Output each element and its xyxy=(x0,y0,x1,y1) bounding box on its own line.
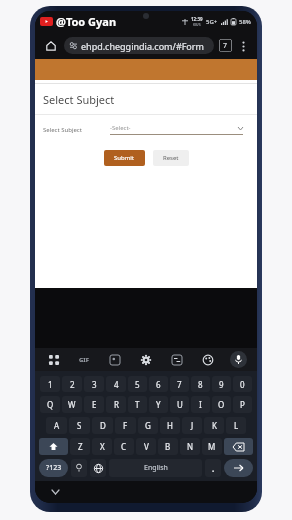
staticText: P xyxy=(240,399,245,410)
button[interactable]: Y xyxy=(149,396,168,413)
button[interactable]: GIF xyxy=(76,352,92,368)
button[interactable]: 2 xyxy=(62,376,82,392)
staticText: KB/S xyxy=(193,22,201,27)
staticText: 2 xyxy=(70,379,75,390)
button[interactable]: Z xyxy=(70,438,90,455)
button[interactable]: M xyxy=(202,438,222,455)
staticText: English xyxy=(144,463,168,473)
button[interactable]: More options xyxy=(236,39,250,53)
staticText: 5G+ xyxy=(206,18,218,26)
button[interactable]: N xyxy=(180,438,200,455)
button[interactable]: Submit xyxy=(104,150,145,166)
staticText: E xyxy=(92,399,97,410)
button[interactable]: ehpd.cheggindia.com/#Form xyxy=(64,37,214,54)
staticText: . xyxy=(212,463,215,474)
button[interactable]: ?123 xyxy=(39,459,68,477)
staticText: B xyxy=(165,441,171,452)
button[interactable]: U xyxy=(170,396,189,413)
button[interactable]: Q xyxy=(40,396,60,413)
button[interactable]: 8 xyxy=(191,376,210,392)
button[interactable]: Apps xyxy=(45,351,62,368)
button[interactable]: O xyxy=(212,396,231,413)
button[interactable]: D xyxy=(92,417,113,434)
staticText: S xyxy=(77,420,82,431)
button[interactable]: 3 xyxy=(84,376,104,392)
staticText: R xyxy=(114,399,119,410)
staticText: F xyxy=(123,420,128,431)
button[interactable]: Reset xyxy=(153,150,189,166)
button[interactable]: 9 xyxy=(212,376,231,392)
button[interactable]: Settings xyxy=(137,351,154,368)
button[interactable]: E xyxy=(84,396,104,413)
button[interactable]: X xyxy=(92,438,112,455)
button[interactable]: B xyxy=(158,438,178,455)
staticText: X xyxy=(100,441,105,452)
staticText: H xyxy=(167,420,173,431)
staticText: M xyxy=(208,441,216,452)
button[interactable]: P xyxy=(233,396,252,413)
button[interactable]: . xyxy=(205,459,221,477)
button[interactable]: Tabs xyxy=(219,39,232,52)
staticText: N xyxy=(187,441,194,452)
staticText: Select Subject xyxy=(43,92,115,107)
button[interactable]: Hide keyboard xyxy=(49,486,61,498)
button[interactable]: Home xyxy=(42,37,60,55)
button[interactable]: 7 xyxy=(170,376,189,392)
button[interactable]: C xyxy=(114,438,134,455)
staticText: 6 xyxy=(156,379,161,390)
button[interactable]: Change language xyxy=(90,459,106,477)
staticText: U xyxy=(177,399,183,410)
button[interactable]: F xyxy=(115,417,136,434)
staticText: Select Subject xyxy=(43,126,82,134)
button[interactable]: 5 xyxy=(128,376,147,392)
button[interactable]: T xyxy=(128,396,147,413)
staticText: 7 xyxy=(177,379,182,390)
staticText: O xyxy=(218,399,225,410)
staticText: T xyxy=(135,399,140,410)
staticText: ehpd.cheggindia.com/#Form xyxy=(81,40,204,52)
staticText: Q xyxy=(47,399,54,410)
staticText: 9 xyxy=(219,379,224,390)
button[interactable]: English xyxy=(109,459,202,477)
staticText: GIF xyxy=(79,356,89,364)
button[interactable]: Themes xyxy=(199,351,216,368)
button[interactable]: 4 xyxy=(106,376,126,392)
staticText: A xyxy=(54,420,60,431)
staticText: 1 xyxy=(48,379,53,390)
button[interactable]: V xyxy=(136,438,156,455)
button[interactable]: 1 xyxy=(40,376,60,392)
button[interactable]: K xyxy=(204,417,224,434)
button[interactable]: A xyxy=(46,417,67,434)
button[interactable]: Voice input xyxy=(230,351,247,368)
button[interactable]: I xyxy=(191,396,210,413)
staticText: @Too Gyan xyxy=(56,14,117,29)
button[interactable]: H xyxy=(160,417,180,434)
button[interactable]: Stickers xyxy=(106,351,123,368)
staticText: 5 xyxy=(135,379,140,390)
staticText: I xyxy=(199,399,202,410)
button[interactable]: Enter xyxy=(224,459,253,477)
staticText: Reset xyxy=(163,154,179,162)
button[interactable]: Translate xyxy=(168,351,185,368)
staticText: W xyxy=(68,399,76,410)
button[interactable]: -Select- xyxy=(110,124,243,135)
staticText: 12:39 xyxy=(191,16,203,22)
staticText: K xyxy=(212,420,217,431)
staticText: -Select- xyxy=(110,124,131,132)
button[interactable]: Emoji xyxy=(71,459,87,477)
button[interactable]: 6 xyxy=(149,376,168,392)
staticText: C xyxy=(121,441,127,452)
button[interactable]: W xyxy=(62,396,82,413)
button[interactable]: L xyxy=(226,417,246,434)
staticText: L xyxy=(234,420,239,431)
button[interactable]: Backspace xyxy=(224,438,253,455)
button[interactable]: J xyxy=(182,417,202,434)
button[interactable]: R xyxy=(106,396,126,413)
button[interactable]: Shift xyxy=(39,438,68,455)
button[interactable]: 0 xyxy=(233,376,252,392)
staticText: 3 xyxy=(92,379,97,390)
staticText: 8 xyxy=(198,379,203,390)
staticText: 7 xyxy=(223,41,228,51)
button[interactable]: S xyxy=(69,417,90,434)
button[interactable]: G xyxy=(138,417,158,434)
